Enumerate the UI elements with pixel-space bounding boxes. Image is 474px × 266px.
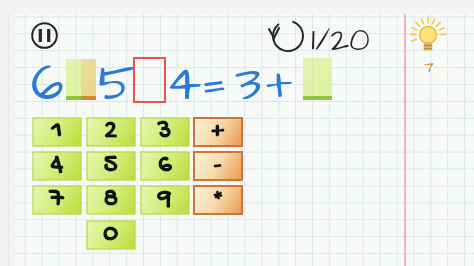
button[interactable] (33, 118, 81, 146)
button[interactable] (141, 186, 189, 214)
button[interactable] (87, 152, 135, 180)
button[interactable] (33, 152, 81, 180)
button[interactable]: Pause (31, 22, 58, 49)
button[interactable] (266, 16, 396, 56)
button[interactable]: Hint (410, 14, 448, 74)
button[interactable] (194, 118, 242, 146)
button[interactable] (87, 221, 135, 249)
button[interactable] (141, 118, 189, 146)
button[interactable] (87, 118, 135, 146)
button[interactable] (194, 152, 242, 180)
button[interactable] (141, 152, 189, 180)
button[interactable] (194, 186, 242, 214)
button[interactable] (87, 186, 135, 214)
button[interactable] (33, 186, 81, 214)
